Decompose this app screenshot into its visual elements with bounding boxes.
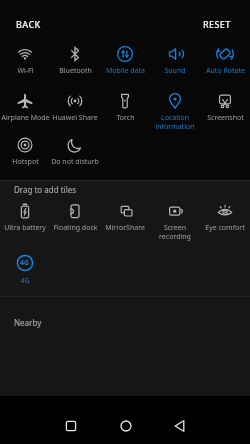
staticText: Nearby xyxy=(14,317,42,328)
staticText: Floating dock xyxy=(53,223,98,233)
button[interactable]: Airplane Mode xyxy=(0,91,55,123)
staticText: Drag to add tiles xyxy=(14,184,77,195)
staticText: Eye comfort xyxy=(205,223,245,233)
button[interactable] xyxy=(55,410,87,442)
staticText: Bluetooth xyxy=(59,66,92,76)
button[interactable]: Mobile data xyxy=(95,44,155,76)
staticText: BACK xyxy=(16,18,41,30)
staticText: Do not disturb xyxy=(51,157,99,167)
button[interactable]: Do not disturb xyxy=(45,135,105,167)
button[interactable]: MirrorShare xyxy=(95,201,155,233)
button[interactable] xyxy=(164,410,196,442)
staticText: Hotspot xyxy=(12,157,39,167)
staticText: RESET xyxy=(203,18,231,30)
button[interactable] xyxy=(110,410,142,442)
button[interactable]: Wi-Fi xyxy=(0,44,55,76)
button[interactable]: Floating dock xyxy=(45,201,105,233)
button[interactable]: Hotspot xyxy=(0,135,55,167)
staticText: MirrorShare xyxy=(105,223,145,233)
staticText: Location information xyxy=(155,113,195,131)
button[interactable]: Screen recording xyxy=(145,201,205,241)
staticText: Ultra battery xyxy=(4,223,46,233)
staticText: 4G xyxy=(20,276,30,286)
button[interactable]: Huawei Share xyxy=(45,91,105,123)
button[interactable]: 4G xyxy=(0,253,55,286)
staticText: Torch xyxy=(116,113,135,123)
button[interactable]: Auto Rotate xyxy=(195,44,250,76)
button[interactable]: Location information xyxy=(145,91,205,131)
staticText: Auto Rotate xyxy=(206,66,245,76)
staticText: Sound xyxy=(164,66,186,76)
button[interactable]: Sound xyxy=(145,44,205,76)
staticText: Huawei Share xyxy=(52,113,98,123)
staticText: Screenshot xyxy=(207,113,244,123)
button[interactable]: Torch xyxy=(95,91,155,123)
button[interactable]: Bluetooth xyxy=(45,44,105,76)
staticText: Mobile data xyxy=(106,66,145,76)
button[interactable]: RESET xyxy=(197,13,225,25)
staticText: Wi-Fi xyxy=(17,66,34,76)
staticText: Screen recording xyxy=(159,223,191,241)
button[interactable]: Eye comfort xyxy=(195,201,250,233)
button[interactable]: BACK xyxy=(10,13,35,25)
staticText: Airplane Mode xyxy=(1,113,50,123)
button[interactable]: Ultra battery xyxy=(0,201,55,233)
staticText: 4G xyxy=(20,258,30,268)
button[interactable]: Screenshot xyxy=(195,91,250,123)
